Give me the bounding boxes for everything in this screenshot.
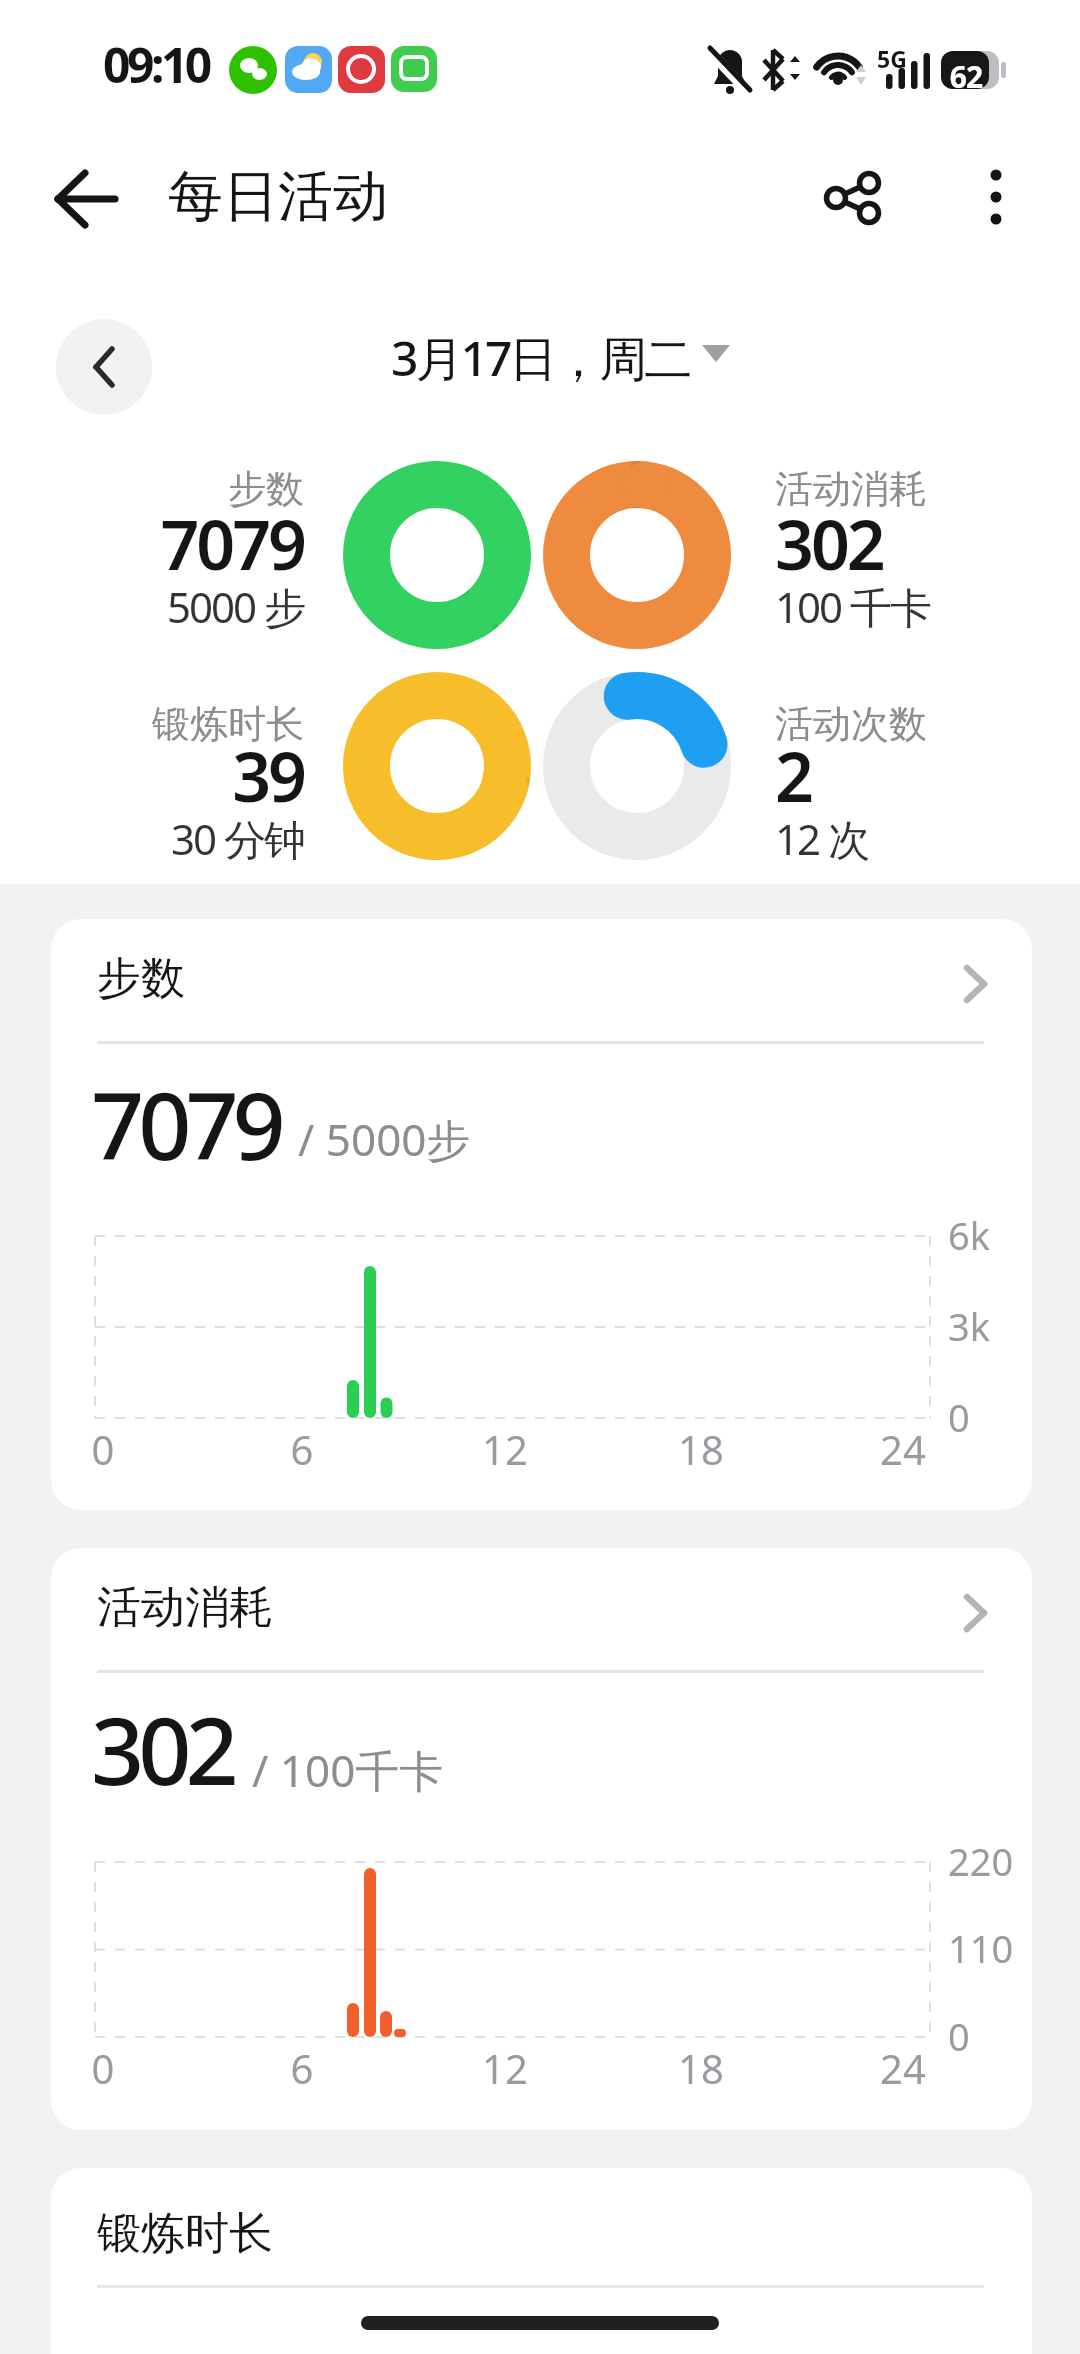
button[interactable]: [56, 319, 152, 415]
staticText: 302: [91, 1686, 233, 1813]
staticText: 302: [775, 497, 883, 590]
staticText: 7079: [91, 1061, 280, 1188]
button[interactable]: [812, 160, 892, 240]
staticText: 锻炼时长: [0, 700, 304, 748]
staticText: 活动消耗: [775, 465, 927, 513]
staticText: 24: [873, 1422, 933, 1476]
staticText: 18: [671, 1422, 731, 1476]
staticText: 2: [775, 729, 811, 822]
staticText: / 100千卡: [252, 1740, 444, 1800]
staticText: 12 次: [775, 810, 868, 867]
staticText: 6k: [948, 1209, 991, 1261]
staticText: 步数: [97, 951, 185, 1006]
button[interactable]: 锻炼时长: [51, 2168, 1032, 2354]
staticText: 09:10: [103, 32, 209, 97]
staticText: 6: [272, 2041, 332, 2095]
staticText: 110: [948, 1922, 1014, 1974]
staticText: 5G: [877, 43, 907, 74]
staticText: 3月17日，周二: [391, 325, 690, 391]
staticText: 活动次数: [775, 700, 927, 748]
staticText: 3k: [948, 1300, 991, 1352]
button[interactable]: [960, 160, 1032, 240]
staticText: 12: [475, 2041, 535, 2095]
button[interactable]: 步数: [51, 919, 1032, 1510]
button[interactable]: 活动消耗: [51, 1548, 1032, 2130]
staticText: / 5000步: [298, 1109, 471, 1169]
button[interactable]: 3月17日，周二: [391, 325, 690, 391]
staticText: 0: [948, 1391, 970, 1443]
staticText: 62: [941, 56, 991, 97]
staticText: 7079: [0, 497, 304, 590]
button[interactable]: [40, 160, 130, 240]
staticText: 30 分钟: [0, 810, 304, 867]
staticText: 100 千卡: [775, 578, 930, 635]
staticText: 步数: [0, 465, 304, 513]
staticText: 5000 步: [0, 578, 304, 635]
staticText: 0: [73, 1422, 133, 1476]
staticText: 18: [671, 2041, 731, 2095]
staticText: 39: [0, 729, 304, 822]
staticText: 每日活动: [168, 162, 388, 231]
staticText: 12: [475, 1422, 535, 1476]
staticText: 锻炼时长: [97, 2206, 273, 2261]
staticText: 0: [73, 2041, 133, 2095]
staticText: 24: [873, 2041, 933, 2095]
staticText: 6: [272, 1422, 332, 1476]
staticText: 220: [948, 1835, 1014, 1887]
staticText: 0: [948, 2010, 970, 2062]
staticText: 活动消耗: [97, 1580, 273, 1635]
